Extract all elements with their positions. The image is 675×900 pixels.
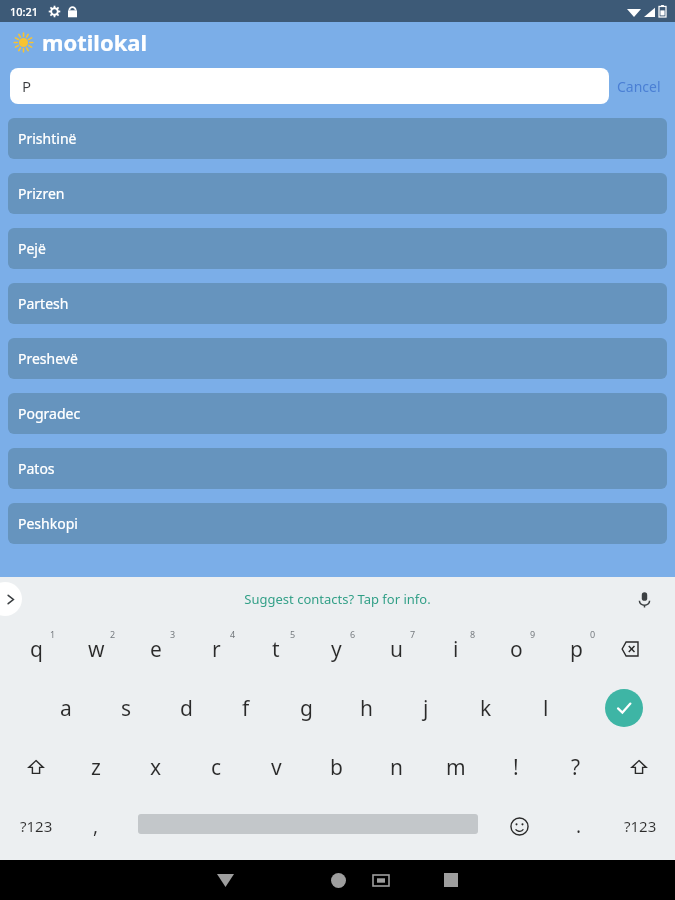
staticText: Patos — [18, 459, 55, 478]
staticText: ! — [513, 753, 519, 782]
button[interactable]: o — [489, 620, 543, 678]
staticText: 5 — [290, 628, 296, 640]
button[interactable]: q — [9, 620, 63, 678]
button[interactable]: Peshkopi — [8, 503, 667, 544]
button[interactable]: t — [249, 620, 303, 678]
staticText: ?123 — [624, 816, 657, 836]
staticText: w — [88, 635, 105, 664]
button[interactable]: Shift — [12, 738, 60, 796]
staticText: v — [271, 753, 282, 782]
staticText: e — [150, 635, 162, 664]
staticText: Pejë — [18, 239, 46, 258]
staticText: 9 — [530, 628, 536, 640]
staticText: q — [30, 635, 43, 664]
staticText: 2 — [110, 628, 116, 640]
button[interactable]: , — [72, 796, 120, 856]
staticText: 8 — [470, 628, 476, 640]
staticText: 6 — [350, 628, 356, 640]
staticText: Partesh — [18, 294, 69, 313]
staticText: s — [121, 694, 132, 723]
staticText: P — [22, 76, 32, 96]
button[interactable]: e — [129, 620, 183, 678]
button[interactable]: d — [159, 678, 213, 738]
button[interactable]: Pejë — [8, 228, 667, 269]
button[interactable]: Patos — [8, 448, 667, 489]
button[interactable]: s — [99, 678, 153, 738]
button[interactable]: p — [549, 620, 603, 678]
button[interactable]: y — [309, 620, 363, 678]
staticText: 0 — [590, 628, 596, 640]
button[interactable]: Prishtinë — [8, 118, 667, 159]
staticText: n — [390, 753, 403, 782]
staticText: l — [543, 694, 549, 723]
button[interactable]: Keyboard layout — [367, 866, 395, 894]
button[interactable]: Prizren — [8, 173, 667, 214]
button[interactable]: x — [129, 738, 183, 796]
button[interactable]: z — [69, 738, 123, 796]
staticText: x — [150, 753, 162, 782]
button[interactable]: c — [189, 738, 243, 796]
staticText: g — [300, 694, 313, 723]
button[interactable]: b — [309, 738, 363, 796]
staticText: m — [446, 753, 466, 782]
button[interactable]: ! — [489, 738, 543, 796]
staticText: r — [212, 635, 221, 664]
staticText: Prishtinë — [18, 129, 77, 148]
button[interactable]: Shift — [615, 738, 663, 796]
button[interactable]: j — [399, 678, 453, 738]
button[interactable]: Recents — [435, 864, 467, 896]
button[interactable]: g — [279, 678, 333, 738]
staticText: h — [360, 694, 373, 723]
button[interactable]: Preshevë — [8, 338, 667, 379]
button[interactable]: Back — [209, 864, 241, 896]
button[interactable]: Suggest contacts? Tap for info. — [244, 590, 431, 608]
button[interactable]: r — [189, 620, 243, 678]
staticText: Peshkopi — [18, 514, 78, 533]
button[interactable]: v — [249, 738, 303, 796]
button[interactable]: Backspace — [614, 636, 640, 662]
staticText: ? — [571, 753, 581, 782]
staticText: Pogradec — [18, 404, 81, 423]
staticText: d — [180, 694, 193, 723]
staticText: , — [93, 813, 99, 839]
staticText: a — [60, 694, 72, 723]
button[interactable]: Home — [322, 864, 354, 896]
staticText: ?123 — [20, 816, 53, 836]
button[interactable]: l — [519, 678, 573, 738]
button[interactable]: ?123 — [8, 796, 64, 856]
button[interactable]: Pogradec — [8, 393, 667, 434]
button[interactable]: m — [429, 738, 483, 796]
staticText: Preshevë — [18, 349, 78, 368]
button[interactable]: Voice input — [631, 586, 657, 612]
staticText: . — [576, 813, 582, 839]
button[interactable]: i — [429, 620, 483, 678]
staticText: Prizren — [18, 184, 65, 203]
button[interactable]: h — [339, 678, 393, 738]
button[interactable]: Enter — [605, 689, 643, 727]
staticText: j — [423, 694, 429, 723]
staticText: 3 — [170, 628, 176, 640]
staticText: 4 — [230, 628, 236, 640]
button[interactable]: k — [459, 678, 513, 738]
staticText: 10:21 — [10, 4, 39, 19]
button[interactable]: . — [556, 796, 602, 856]
staticText: motilokal — [42, 27, 148, 57]
button[interactable]: a — [39, 678, 93, 738]
staticText: t — [272, 635, 280, 664]
button[interactable]: Partesh — [8, 283, 667, 324]
staticText: Cancel — [617, 77, 661, 96]
button[interactable]: n — [369, 738, 423, 796]
button[interactable]: u — [369, 620, 423, 678]
staticText: k — [480, 694, 492, 723]
staticText: c — [211, 753, 222, 782]
button[interactable]: ?123 — [612, 796, 668, 856]
button[interactable]: Expand suggestions — [0, 582, 22, 616]
button[interactable]: P — [10, 68, 609, 104]
button[interactable]: ? — [549, 738, 603, 796]
button[interactable]: f — [219, 678, 273, 738]
button[interactable]: Cancel — [609, 71, 669, 102]
button[interactable]: Emoji — [496, 796, 542, 856]
staticText: 7 — [410, 628, 416, 640]
button[interactable]: w — [69, 620, 123, 678]
